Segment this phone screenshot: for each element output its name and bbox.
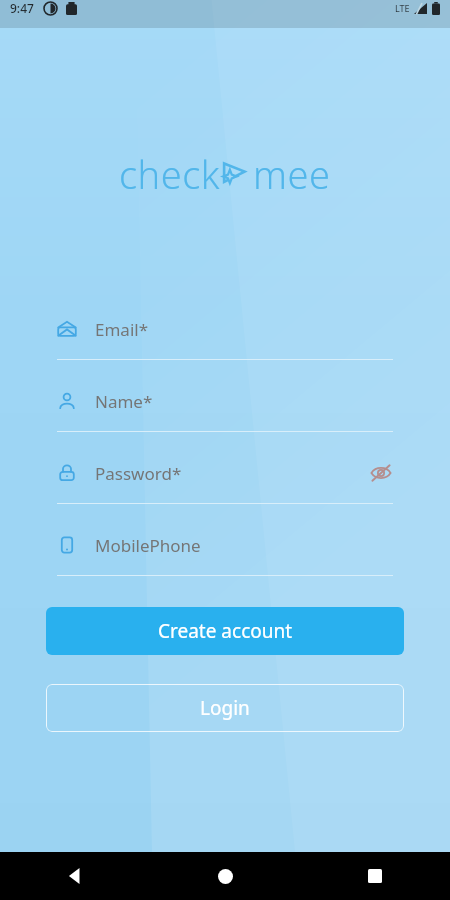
button[interactable]: Email*	[57, 312, 393, 360]
staticText: Email*	[95, 318, 149, 341]
staticText: mee	[253, 148, 331, 200]
staticText: 9:47	[10, 0, 34, 16]
button[interactable]: Home	[150, 852, 300, 900]
button[interactable]: MobilePhone	[57, 528, 393, 576]
button[interactable]: Password*	[57, 456, 393, 504]
staticText: Password*	[95, 462, 182, 485]
button[interactable]: Name*	[57, 384, 393, 432]
staticText: Create account	[158, 618, 293, 644]
staticText: Login	[200, 695, 250, 721]
staticText: check	[119, 148, 221, 200]
staticText: LTE	[395, 2, 410, 14]
staticText: MobilePhone	[95, 534, 201, 557]
button[interactable]: Back	[0, 852, 150, 900]
button[interactable]: Create account	[46, 607, 404, 655]
button[interactable]: Login	[46, 684, 404, 732]
button[interactable]: Recent apps	[300, 852, 450, 900]
button[interactable]: Show password	[369, 461, 393, 485]
staticText: Name*	[95, 390, 153, 413]
